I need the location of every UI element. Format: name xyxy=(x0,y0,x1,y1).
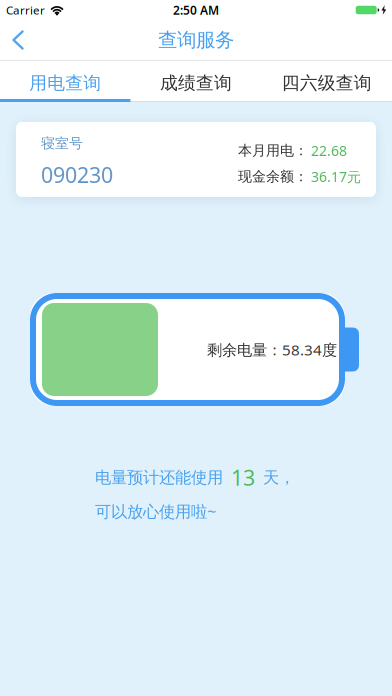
staticText: 13 xyxy=(231,463,255,492)
staticText: 成绩查询 xyxy=(160,72,232,94)
button[interactable]: 四六级查询 xyxy=(261,61,392,99)
staticText: 现金余额： xyxy=(238,168,308,185)
staticText: Carrier xyxy=(6,2,45,18)
button[interactable]: Back xyxy=(0,20,24,60)
button[interactable]: 用电查询 xyxy=(0,61,131,99)
button[interactable]: 成绩查询 xyxy=(131,61,261,99)
staticText: 天， xyxy=(263,467,295,488)
staticText: 可以放心使用啦~ xyxy=(95,500,216,522)
staticText: 剩余电量：58.34度 xyxy=(207,339,337,360)
staticText: 22.68 xyxy=(311,141,347,160)
staticText: 36.17元 xyxy=(311,167,361,186)
staticText: 090230 xyxy=(41,160,113,189)
staticText: 2:50 AM xyxy=(173,2,219,18)
staticText: 用电查询 xyxy=(29,72,101,94)
staticText: 本月用电： xyxy=(238,142,308,159)
staticText: 四六级查询 xyxy=(282,72,372,94)
staticText: 电量预计还能使用 xyxy=(95,467,223,488)
staticText: 寝室号 xyxy=(41,135,83,152)
staticText: 查询服务 xyxy=(158,28,234,52)
